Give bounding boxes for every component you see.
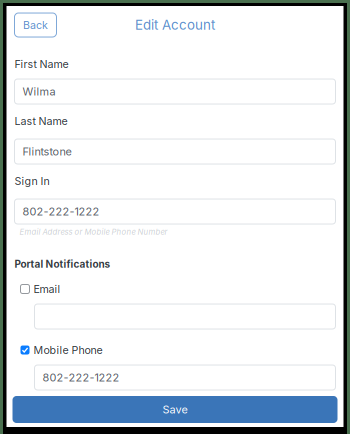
staticText: First Name <box>14 57 68 70</box>
staticText: Mobile Phone <box>33 343 102 356</box>
button[interactable]: Mobile Phone <box>14 345 335 355</box>
staticText: Back <box>23 18 48 31</box>
staticText: Sign In <box>14 174 49 187</box>
staticText: Portal Notifications <box>14 258 110 270</box>
staticText: Flintstone <box>22 145 71 158</box>
staticText: 802-222-1222 <box>42 371 119 384</box>
staticText: Edit Account <box>135 17 215 33</box>
staticText: Last Name <box>14 114 67 127</box>
staticText: Wilma <box>22 85 55 98</box>
button[interactable]: Back <box>14 13 56 37</box>
staticText: Save <box>162 403 187 416</box>
button[interactable]: Email <box>14 284 335 294</box>
staticText: Email <box>33 282 60 295</box>
button[interactable]: Save <box>12 396 337 423</box>
staticText: Email Address or Mobile Phone Number <box>19 227 167 237</box>
staticText: 802-222-1222 <box>22 205 99 218</box>
